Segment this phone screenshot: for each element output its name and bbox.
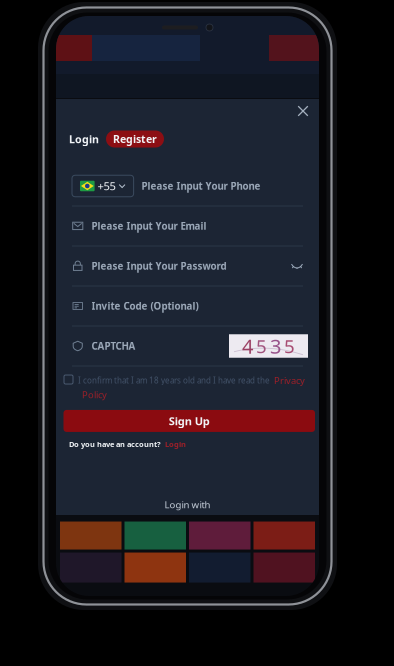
button[interactable]: Show password xyxy=(291,262,303,269)
staticText: +55 xyxy=(98,178,116,194)
staticText: Policy xyxy=(82,388,107,401)
staticText: CAPTCHA xyxy=(91,339,135,353)
staticText: Login xyxy=(69,132,99,146)
staticText: Please Input Your Email xyxy=(91,219,206,233)
staticText: 5 xyxy=(284,333,295,359)
staticText: 5 xyxy=(256,333,267,359)
staticText: Login xyxy=(165,439,186,449)
staticText: Do you have an account? xyxy=(69,439,161,449)
staticText: 3 xyxy=(270,332,281,360)
staticText: Sign Up xyxy=(169,413,210,428)
staticText: Register xyxy=(113,132,157,146)
staticText: Please Input Your Phone xyxy=(142,179,261,193)
staticText: Please Input Your Password xyxy=(91,259,226,273)
staticText: 4 xyxy=(242,332,253,360)
staticText: I confirm that I am 18 years old and I h… xyxy=(78,375,270,386)
button[interactable]: Sign Up xyxy=(63,410,315,432)
button[interactable]: Close xyxy=(291,99,315,123)
button[interactable]: Refresh captcha xyxy=(229,334,308,358)
button[interactable]: Register xyxy=(106,130,164,147)
button[interactable]: +55 xyxy=(72,175,134,197)
button[interactable]: Login xyxy=(165,439,186,449)
button[interactable]: Login xyxy=(69,128,99,150)
staticText: Login with xyxy=(164,498,210,511)
staticText: Privacy xyxy=(274,374,305,387)
staticText: Invite Code (Optional) xyxy=(91,299,198,313)
button[interactable]: I confirm that I am 18 years old and I h… xyxy=(56,366,322,401)
